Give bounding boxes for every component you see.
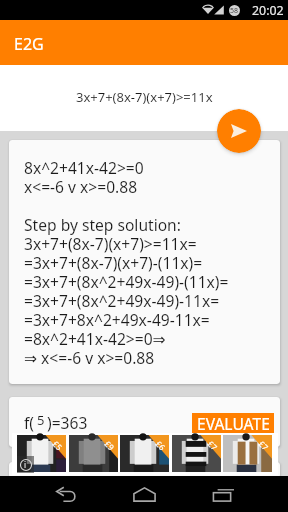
staticText: £9 xyxy=(103,438,117,453)
staticText: )=363 xyxy=(47,412,88,433)
staticText: E2G xyxy=(14,33,44,55)
staticText: 8x^2+41x-42>=0 x<=-6 v x>=0.88 Step by s… xyxy=(24,159,229,368)
staticText: £6 xyxy=(154,438,168,453)
button[interactable]: Send xyxy=(217,109,261,153)
button[interactable]: £5 xyxy=(12,433,278,475)
button[interactable]: Ad info xyxy=(17,456,34,473)
staticText: i xyxy=(24,459,27,470)
staticText: 3x+7+(8x-7)(x+7)>=11x xyxy=(76,88,213,106)
staticText: £7 xyxy=(257,438,271,453)
button[interactable]: Recent apps xyxy=(206,477,240,511)
button[interactable]: Home xyxy=(127,477,161,511)
button[interactable]: 8x^2+41x-42>=0 x<=-6 v x>=0.88 Step by s… xyxy=(9,140,280,384)
button[interactable]: 3x+7+(8x-7)(x+7)>=11x xyxy=(0,65,288,131)
staticText: £7 xyxy=(206,438,220,453)
staticText: EVALUATE xyxy=(197,413,270,434)
staticText: £5 xyxy=(51,438,65,453)
staticText: 5 xyxy=(37,411,45,429)
staticText: f( xyxy=(24,412,35,433)
button[interactable]: Back xyxy=(48,477,82,511)
staticText: 58 xyxy=(230,6,239,16)
button[interactable]: EVALUATE xyxy=(192,413,274,434)
staticText: 20:02 xyxy=(252,2,284,19)
